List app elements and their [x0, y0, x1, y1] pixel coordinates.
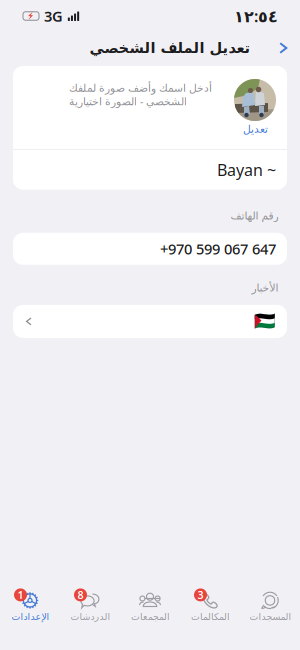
staticText: 🇵🇸	[254, 311, 276, 331]
staticText: ١٢:٥٤	[234, 5, 278, 27]
button[interactable]: المجمعات	[120, 591, 180, 622]
staticText: Bayan ~	[217, 159, 276, 180]
staticText: 3	[197, 588, 203, 602]
button[interactable]: 🇵🇸	[0, 305, 300, 338]
button[interactable]: رجوع	[270, 34, 296, 62]
button[interactable]: 3	[180, 591, 240, 622]
staticText: +970 599 067 647	[160, 239, 276, 259]
staticText: 1	[17, 588, 23, 602]
button[interactable]: المسجدات	[240, 591, 300, 622]
staticText: المكالمات	[190, 611, 229, 622]
staticText: 3G	[44, 6, 63, 26]
staticText: المسجدات	[249, 611, 291, 622]
staticText: أدخل اسمك وأضف صورة لملفك الشخصي - الصور…	[69, 82, 212, 108]
staticText: رقم الهاتف	[230, 210, 278, 222]
staticText: الدردشات	[70, 611, 110, 622]
staticText: الأخبار	[251, 282, 278, 294]
button[interactable]: 8	[60, 591, 120, 622]
staticText: تعديل	[242, 123, 267, 135]
staticText: المجمعات	[130, 611, 169, 622]
staticText: تعديل الملف الشخصي	[89, 40, 250, 56]
staticText: 8	[77, 588, 83, 602]
button[interactable]: تعديل	[234, 66, 276, 135]
staticText: الإعدادات	[11, 611, 49, 622]
button[interactable]: 1	[0, 591, 60, 622]
